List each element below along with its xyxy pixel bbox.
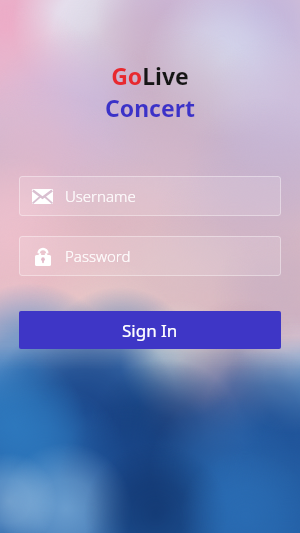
staticText: Password <box>65 246 131 266</box>
button[interactable]: Username <box>19 176 281 216</box>
staticText: Concert <box>105 92 195 123</box>
button[interactable]: Sign In <box>19 311 281 349</box>
staticText: GoLive <box>111 60 189 91</box>
button[interactable]: Password <box>19 236 281 276</box>
staticText: Sign In <box>122 319 178 342</box>
staticText: Username <box>65 186 136 206</box>
